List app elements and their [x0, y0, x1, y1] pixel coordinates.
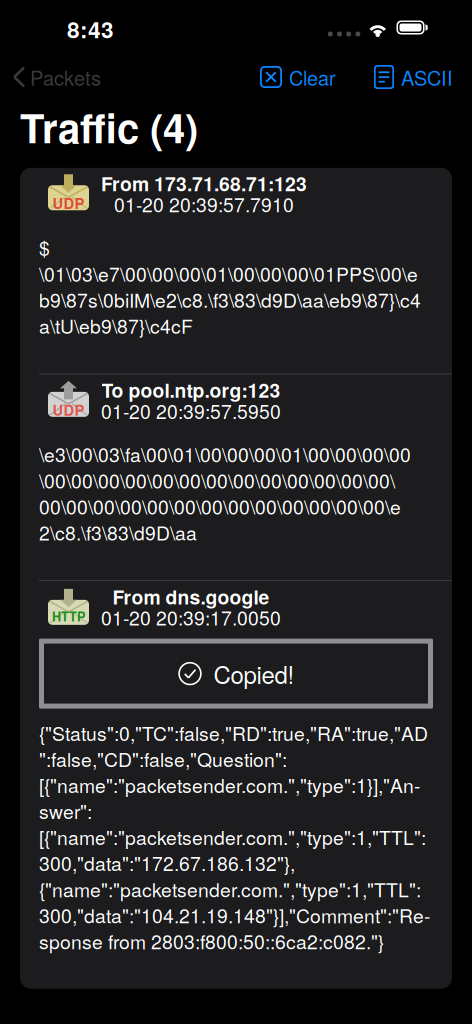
staticText: To pool.ntp.org:123 [101, 379, 280, 400]
button[interactable]: Clear [260, 57, 336, 96]
staticText: 8:43 [67, 14, 114, 44]
staticText: Clear [289, 63, 336, 90]
staticText: HTTP [52, 608, 85, 625]
staticText: Traffic (4) [20, 100, 198, 154]
staticText: 01-20 20:39:57.5950 [101, 400, 281, 421]
staticText: UDP [52, 400, 84, 420]
button[interactable]: Copied! [39, 639, 433, 709]
staticText: UDP [52, 193, 84, 213]
staticText: 01-20 20:39:17.0050 [101, 607, 281, 628]
button[interactable]: Packets [0, 57, 101, 96]
staticText: 01-20 20:39:57.7910 [114, 194, 294, 214]
staticText: From 173.71.68.71:123 [101, 173, 307, 194]
staticText: From dns.google [112, 586, 269, 607]
staticText: Copied! [213, 657, 294, 690]
staticText: \e3\00\03\fa\00\01\00\00\00\01\00\00\00\… [39, 441, 411, 545]
staticText: $ \01\03\e7\00\00\00\01\00\00\00\01PPS\0… [39, 234, 421, 338]
staticText: ASCII [401, 63, 453, 90]
button[interactable]: ASCII [374, 57, 472, 96]
staticText: Packets [30, 63, 101, 90]
staticText: {"Status":0,"TC":false,"RD":true,"RA":tr… [39, 720, 430, 954]
